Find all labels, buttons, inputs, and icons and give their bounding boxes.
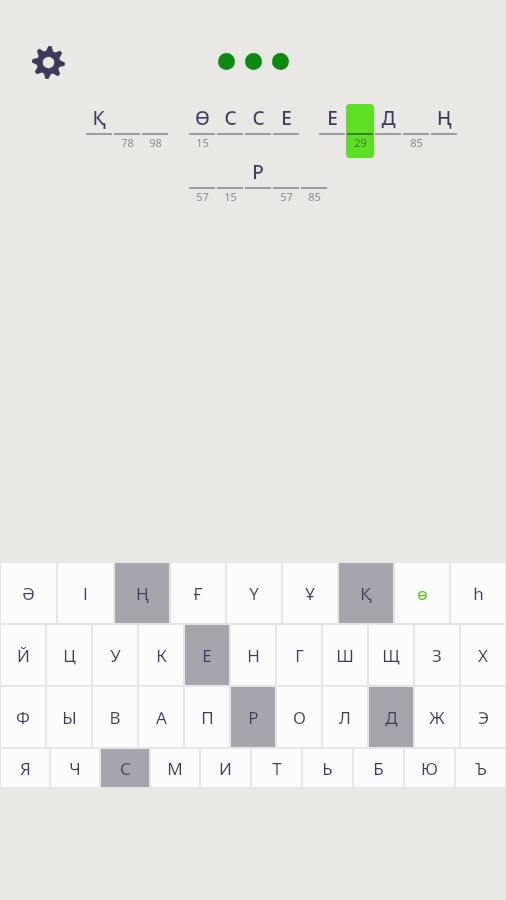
button[interactable]: Л xyxy=(323,687,367,747)
button[interactable]: Й xyxy=(1,625,45,685)
staticText: Д xyxy=(381,105,396,131)
button[interactable]: С xyxy=(216,104,244,158)
button[interactable]: Ө xyxy=(188,104,216,158)
button[interactable]: Ю xyxy=(405,749,454,787)
button[interactable]: О xyxy=(277,687,321,747)
button[interactable]: Е xyxy=(185,625,229,685)
staticText: С xyxy=(120,757,131,780)
button[interactable]: Щ xyxy=(369,625,413,685)
button[interactable]: 57 xyxy=(188,158,216,212)
staticText: Н xyxy=(247,644,260,667)
staticText: П xyxy=(201,706,214,729)
staticText: 57 xyxy=(196,189,209,204)
staticText: 98 xyxy=(149,135,162,150)
button[interactable]: Ң xyxy=(115,563,169,623)
staticText: Л xyxy=(339,706,351,729)
button[interactable]: 57 xyxy=(272,158,300,212)
staticText: Ә xyxy=(22,582,35,605)
button[interactable]: И xyxy=(201,749,250,787)
button[interactable]: 85 xyxy=(300,158,328,212)
button[interactable]: П xyxy=(185,687,229,747)
staticText: А xyxy=(156,706,167,729)
button[interactable]: В xyxy=(93,687,137,747)
staticText: Ң xyxy=(437,105,452,131)
button[interactable]: ө xyxy=(395,563,449,623)
staticText: С xyxy=(252,105,265,131)
staticText: Б xyxy=(373,757,384,780)
button[interactable]: Ж xyxy=(415,687,459,747)
button[interactable]: һ xyxy=(451,563,505,623)
button[interactable]: З xyxy=(415,625,459,685)
staticText: Й xyxy=(17,644,30,667)
staticText: Е xyxy=(327,105,338,131)
button[interactable]: Д xyxy=(369,687,413,747)
button[interactable]: Ш xyxy=(323,625,367,685)
staticText: Ү xyxy=(249,582,259,605)
button[interactable]: Қ xyxy=(85,104,113,158)
staticText: Ж xyxy=(429,706,445,729)
staticText: Қ xyxy=(92,105,106,131)
button[interactable]: Ч xyxy=(51,749,99,787)
button[interactable]: Ә xyxy=(1,563,56,623)
button[interactable]: Ь xyxy=(303,749,352,787)
button[interactable]: Х xyxy=(461,625,505,685)
staticText: Х xyxy=(478,644,488,667)
button[interactable]: Settings xyxy=(26,40,70,84)
button[interactable]: Т xyxy=(252,749,301,787)
staticText: Р xyxy=(252,159,264,185)
button[interactable]: Р xyxy=(244,158,272,212)
staticText: ө xyxy=(417,582,428,605)
staticText: Ы xyxy=(62,706,77,729)
staticText: Ө xyxy=(195,105,210,131)
button[interactable]: Я xyxy=(1,749,49,787)
staticText: 78 xyxy=(121,135,134,150)
button[interactable]: Р xyxy=(231,687,275,747)
staticText: Қ xyxy=(360,582,372,605)
button[interactable]: С xyxy=(101,749,149,787)
staticText: Ұ xyxy=(305,582,315,605)
staticText: Д xyxy=(385,706,398,729)
staticText: Я xyxy=(20,757,31,780)
button[interactable]: Ң xyxy=(430,104,458,158)
button[interactable]: Е xyxy=(318,104,346,158)
staticText: Е xyxy=(202,644,212,667)
button[interactable]: Г xyxy=(277,625,321,685)
button[interactable]: Ғ xyxy=(171,563,225,623)
button[interactable]: Ұ xyxy=(283,563,337,623)
staticText: Ң xyxy=(136,582,149,605)
staticText: 85 xyxy=(308,189,321,204)
button[interactable]: К xyxy=(139,625,183,685)
button[interactable]: Э xyxy=(461,687,505,747)
button[interactable]: У xyxy=(93,625,137,685)
staticText: Т xyxy=(272,757,282,780)
button[interactable]: М xyxy=(151,749,199,787)
button[interactable]: Д xyxy=(374,104,402,158)
staticText: Г xyxy=(295,644,304,667)
staticText: Ц xyxy=(63,644,76,667)
button[interactable]: Ү xyxy=(227,563,281,623)
button[interactable]: Е xyxy=(272,104,300,158)
button[interactable]: Б xyxy=(354,749,403,787)
button[interactable]: А xyxy=(139,687,183,747)
button[interactable]: Ц xyxy=(47,625,91,685)
staticText: Ғ xyxy=(193,582,203,605)
button[interactable]: І xyxy=(58,563,113,623)
staticText: Ч xyxy=(69,757,81,780)
button[interactable]: С xyxy=(244,104,272,158)
button[interactable]: Ъ xyxy=(456,749,505,787)
staticText: В xyxy=(109,706,121,729)
button[interactable]: Қ xyxy=(339,563,393,623)
button[interactable]: 98 xyxy=(141,104,169,158)
staticText: Ш xyxy=(336,644,354,667)
button[interactable]: 78 xyxy=(113,104,141,158)
staticText: һ xyxy=(473,582,484,605)
staticText: С xyxy=(224,105,237,131)
staticText: І xyxy=(83,582,88,605)
button[interactable]: Н xyxy=(231,625,275,685)
button[interactable]: 85 xyxy=(402,104,430,158)
button[interactable]: 15 xyxy=(216,158,244,212)
button[interactable]: Ф xyxy=(1,687,45,747)
button[interactable]: Ы xyxy=(47,687,91,747)
button[interactable]: 29 xyxy=(346,104,374,158)
staticText: Ъ xyxy=(475,757,487,780)
